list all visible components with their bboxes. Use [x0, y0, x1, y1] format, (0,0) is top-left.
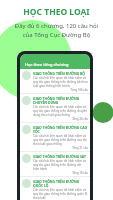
button[interactable]: GIAO THÔNG TRÊN ĐƯỜNG BỘ	[20, 69, 90, 93]
staticText: Các câu hỏi liên quan tới khái niệm và q…	[33, 159, 88, 171]
staticText: HỌC THEO LOẠI	[0, 6, 113, 18]
staticText: Tổng 166 câu	[33, 88, 88, 92]
staticText: GIAO THÔNG TRÊN ĐƯỜNG QUỐC LỘ	[33, 179, 88, 188]
button[interactable]: GIAO THÔNG TRÊN ĐƯỜNG SẮT	[20, 152, 90, 176]
staticText: Đầy đủ 6 chương, 120 câu hỏi của Tổng Cụ…	[0, 22, 113, 39]
staticText: Các câu hỏi liên quan tới khái niệm và q…	[33, 134, 88, 146]
button[interactable]: GIAO THÔNG TRÊN ĐƯỜNG CHUYÊN DÙNG	[20, 94, 90, 122]
button[interactable]: GIAO THÔNG TRÊN ĐƯỜNG QUỐC LỘ	[20, 177, 90, 200]
staticText: GIAO THÔNG TRÊN ĐƯỜNG BỘ	[33, 71, 85, 76]
staticText: Các câu hỏi liên quan tới khái niệm và q…	[33, 188, 88, 199]
staticText: GIAO THÔNG TRÊN ĐƯỜNG SẮT	[33, 154, 86, 159]
staticText: GIAO THÔNG TRÊN ĐƯỜNG CAO TỐC	[33, 125, 88, 134]
staticText: Các câu hỏi liên quan tới khái niệm và q…	[33, 76, 88, 88]
staticText: GIAO THÔNG TRÊN ĐƯỜNG CHUYÊN DÙNG	[33, 96, 88, 105]
button[interactable]: GIAO THÔNG TRÊN ĐƯỜNG CAO TỐC	[20, 123, 90, 151]
staticText: Học theo từng chương	[25, 62, 69, 67]
staticText: Tổng 18 câu	[33, 171, 88, 175]
staticText: Tổng 26 câu	[33, 117, 88, 121]
staticText: Tổng 21 câu	[33, 146, 88, 150]
staticText: Các câu hỏi liên quan tới khái niệm và q…	[33, 105, 88, 117]
